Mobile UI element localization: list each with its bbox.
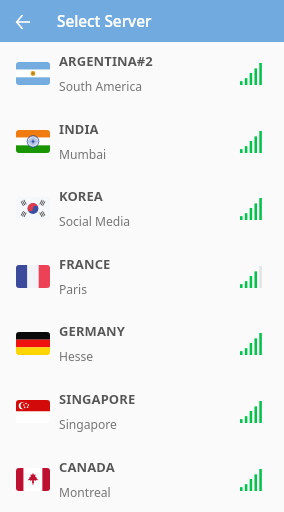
- button[interactable]: ARGENTINA#2: [0, 42, 284, 110]
- button[interactable]: INDIA: [0, 110, 284, 178]
- staticText: Montreal: [59, 484, 111, 500]
- button[interactable]: GERMANY: [0, 312, 284, 380]
- staticText: Select Server: [57, 11, 152, 32]
- staticText: South America: [59, 78, 142, 94]
- staticText: KOREA: [59, 187, 103, 205]
- staticText: INDIA: [59, 120, 99, 138]
- staticText: SINGAPORE: [59, 390, 136, 408]
- button[interactable]: KOREA: [0, 177, 284, 245]
- button[interactable]: SINGAPORE: [0, 380, 284, 448]
- staticText: ARGENTINA#2: [59, 52, 153, 70]
- staticText: Social Media: [59, 213, 131, 229]
- staticText: Hesse: [59, 348, 94, 364]
- button[interactable]: Back: [9, 8, 37, 36]
- button[interactable]: CANADA: [0, 448, 284, 512]
- staticText: Paris: [59, 281, 88, 297]
- staticText: GERMANY: [59, 322, 125, 340]
- button[interactable]: FRANCE: [0, 245, 284, 313]
- staticText: Singapore: [59, 416, 117, 432]
- staticText: CANADA: [59, 458, 115, 476]
- staticText: Mumbai: [59, 146, 107, 162]
- staticText: FRANCE: [59, 255, 111, 273]
